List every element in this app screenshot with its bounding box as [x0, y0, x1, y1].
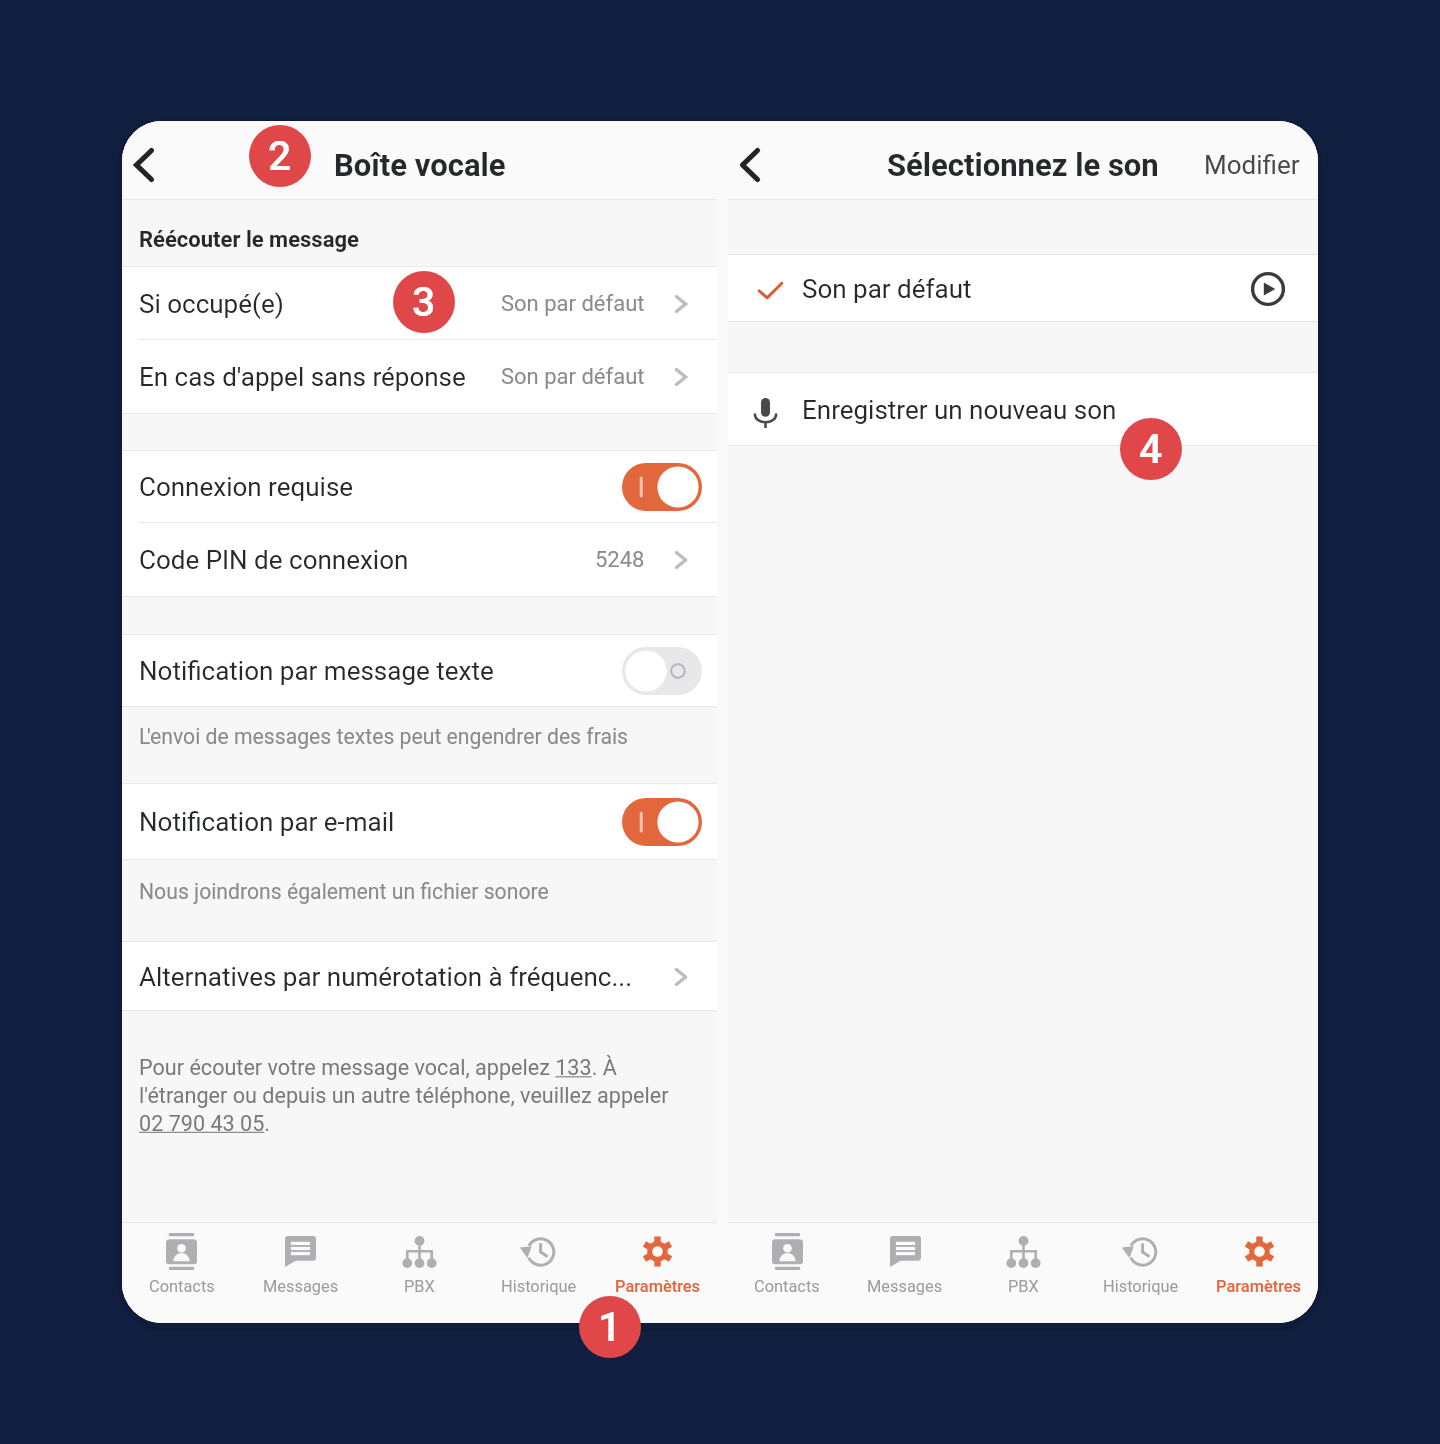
- button[interactable]: Historique: [479, 1223, 598, 1323]
- button[interactable]: Toggle on: [622, 798, 702, 846]
- button[interactable]: Paramètres: [1200, 1223, 1318, 1323]
- staticText: Messages: [867, 1277, 943, 1296]
- staticText: Messages: [263, 1277, 339, 1296]
- staticText: Si occupé(e): [139, 289, 501, 319]
- staticText: Notification par message texte: [139, 656, 622, 686]
- staticText: Modifier: [1204, 150, 1300, 180]
- button[interactable]: Back: [718, 133, 782, 197]
- staticText: PBX: [1008, 1277, 1039, 1296]
- button[interactable]: Si occupé(e): [122, 267, 717, 340]
- staticText: 4: [1139, 425, 1163, 473]
- button[interactable]: Notification par message texte: [122, 635, 717, 707]
- button[interactable]: Back: [122, 133, 176, 197]
- button[interactable]: Paramètres: [598, 1223, 717, 1323]
- staticText: Alternatives par numérotation à fréquenc…: [139, 962, 645, 992]
- button[interactable]: Toggle off: [622, 647, 702, 695]
- staticText: Contacts: [754, 1277, 820, 1296]
- staticText: En cas d'appel sans réponse: [139, 362, 501, 392]
- button[interactable]: En cas d'appel sans réponse: [122, 340, 717, 414]
- staticText: 3: [412, 278, 436, 326]
- button[interactable]: Contacts: [728, 1223, 846, 1323]
- staticText: Son par défaut: [802, 274, 1218, 304]
- staticText: L'envoi de messages textes peut engendre…: [139, 724, 629, 749]
- button[interactable]: Alternatives par numérotation à fréquenc…: [122, 942, 717, 1011]
- staticText: Code PIN de connexion: [139, 545, 595, 575]
- staticText: Boîte vocale: [334, 147, 506, 183]
- staticText: Son par défaut: [501, 291, 645, 317]
- button[interactable]: Enregistrer un nouveau son: [728, 373, 1318, 446]
- staticText: Connexion requise: [139, 472, 622, 502]
- staticText: Son par défaut: [501, 364, 645, 390]
- button[interactable]: Toggle on: [622, 463, 702, 511]
- staticText: Historique: [501, 1277, 577, 1296]
- staticText: 5248: [595, 547, 645, 573]
- button[interactable]: Messages: [846, 1223, 964, 1323]
- staticText: Historique: [1103, 1277, 1179, 1296]
- button[interactable]: Messages: [241, 1223, 360, 1323]
- button[interactable]: PBX: [964, 1223, 1082, 1323]
- button[interactable]: Play sound: [1218, 255, 1318, 322]
- button[interactable]: Notification par e-mail: [122, 784, 717, 860]
- staticText: Contacts: [149, 1277, 215, 1296]
- button[interactable]: Contacts: [122, 1223, 241, 1323]
- button[interactable]: Connexion requise: [122, 451, 717, 523]
- staticText: Paramètres: [1216, 1277, 1302, 1296]
- button[interactable]: Modifier: [1186, 125, 1318, 204]
- staticText: Sélectionnez le son: [887, 147, 1159, 183]
- staticText: Nous joindrons également un fichier sono…: [139, 879, 549, 904]
- staticText: 1: [598, 1303, 622, 1351]
- staticText: Enregistrer un nouveau son: [802, 395, 1318, 425]
- button[interactable]: PBX: [360, 1223, 479, 1323]
- button[interactable]: Historique: [1082, 1223, 1200, 1323]
- staticText: Notification par e-mail: [139, 807, 622, 837]
- staticText: PBX: [404, 1277, 435, 1296]
- button[interactable]: Code PIN de connexion: [122, 523, 717, 597]
- staticText: 2: [268, 132, 292, 180]
- staticText: Pour écouter votre message vocal, appele…: [139, 1055, 669, 1136]
- staticText: Réécouter le message: [139, 227, 359, 253]
- button[interactable]: Son par défaut: [728, 255, 1318, 322]
- staticText: Paramètres: [615, 1277, 701, 1296]
